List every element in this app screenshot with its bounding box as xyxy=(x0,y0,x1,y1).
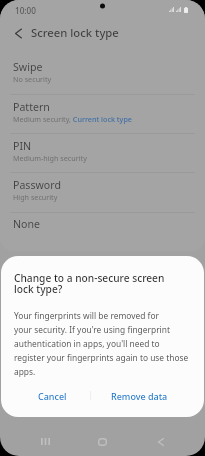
button[interactable]: Password xyxy=(0,172,205,211)
button[interactable]: Pattern xyxy=(0,94,205,133)
staticText: Medium-high security xyxy=(13,153,87,163)
staticText: Your fingerprints will be removed for yo… xyxy=(14,310,189,377)
button[interactable]: PIN xyxy=(0,133,205,172)
staticText: Remove data xyxy=(111,390,168,402)
staticText: PIN xyxy=(13,139,32,153)
button[interactable]: Home xyxy=(86,425,119,456)
staticText: No security xyxy=(13,74,52,84)
staticText: Screen lock type xyxy=(31,25,119,40)
staticText: None xyxy=(13,217,40,231)
button[interactable]: Recent apps xyxy=(29,425,62,456)
button[interactable]: None xyxy=(0,211,205,250)
staticText: High security xyxy=(13,192,58,202)
staticText: Swipe xyxy=(13,60,43,74)
staticText: Change to a non-secure screen lock type? xyxy=(14,271,165,296)
staticText: Password xyxy=(13,178,61,192)
button[interactable]: Swipe xyxy=(0,54,205,93)
staticText: Cancel xyxy=(38,390,67,402)
button[interactable]: Navigate up xyxy=(7,22,29,44)
staticText: 10:00 xyxy=(15,5,36,16)
button[interactable]: Cancel xyxy=(21,385,83,407)
staticText: Pattern xyxy=(13,100,50,114)
button[interactable]: Back xyxy=(144,425,177,456)
staticText: Medium security, Current lock type xyxy=(13,114,132,124)
button[interactable]: Remove data xyxy=(106,385,172,407)
